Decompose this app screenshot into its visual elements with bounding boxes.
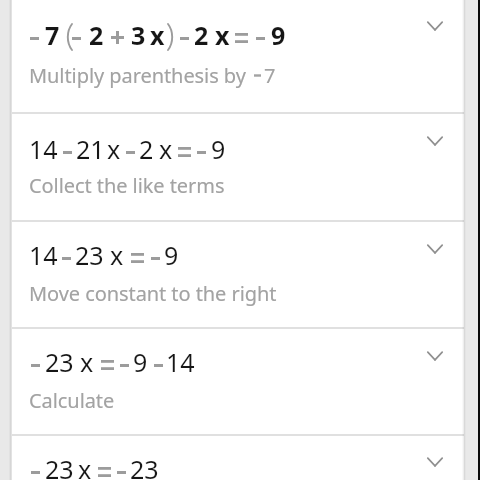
button[interactable]: Expand step	[422, 128, 448, 154]
staticText: Collect the like terms	[29, 172, 225, 199]
button[interactable]: 14	[12, 114, 464, 220]
staticText: x	[215, 18, 230, 52]
staticText: 9	[211, 132, 226, 166]
staticText: Move constant to the right	[29, 280, 277, 307]
button[interactable]: 23	[12, 436, 464, 480]
button[interactable]: Expand step	[422, 13, 448, 39]
staticText: Calculate	[29, 387, 115, 414]
staticText: 2	[89, 18, 104, 52]
staticText: 14	[29, 132, 58, 166]
staticText: 9	[164, 238, 179, 272]
staticText: 23	[75, 238, 104, 272]
staticText: 7	[45, 18, 60, 52]
staticText: 9	[133, 345, 148, 379]
staticText: 14	[29, 238, 58, 272]
staticText: x	[78, 452, 92, 480]
staticText: 23	[45, 345, 74, 379]
staticText: 2	[139, 132, 154, 166]
staticText: x	[110, 238, 124, 272]
button[interactable]: 23	[12, 329, 464, 434]
staticText: 9	[271, 18, 286, 52]
staticText: 23	[130, 452, 159, 480]
staticText: Multiply parenthesis by	[29, 62, 246, 89]
staticText: x	[107, 132, 121, 166]
staticText: 3	[131, 18, 146, 52]
button[interactable]: Expand step	[422, 343, 448, 369]
button[interactable]: 14	[12, 222, 464, 327]
staticText: 23	[45, 452, 74, 480]
staticText: 7	[264, 62, 276, 89]
staticText: 14	[166, 345, 195, 379]
button[interactable]: Expand step	[422, 236, 448, 262]
staticText: 21	[76, 132, 105, 166]
button[interactable]: Expand step	[422, 449, 448, 475]
staticText: x	[159, 132, 173, 166]
button[interactable]: 7	[12, 0, 464, 112]
staticText: 2	[194, 18, 209, 52]
staticText: x	[80, 345, 94, 379]
staticText: x	[150, 18, 165, 52]
